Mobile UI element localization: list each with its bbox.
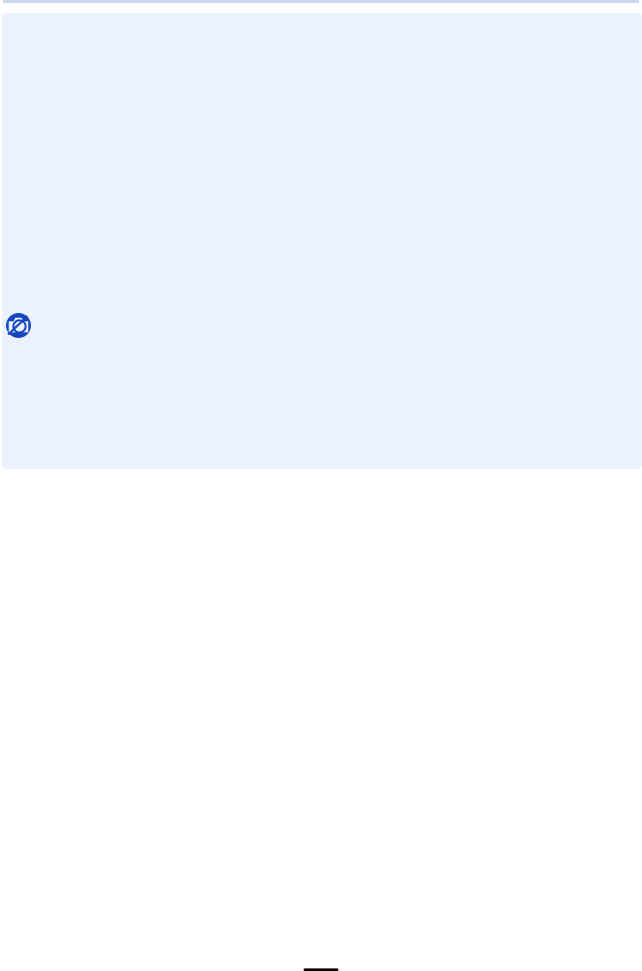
button[interactable]: Image failed to load <box>2 13 642 469</box>
